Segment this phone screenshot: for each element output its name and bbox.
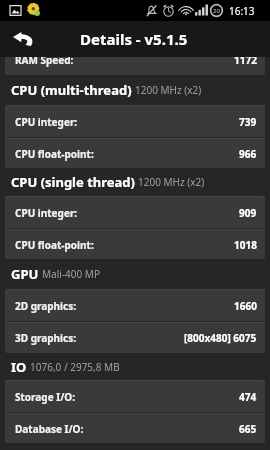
staticText: 2D graphics: bbox=[15, 299, 77, 313]
staticText: CPU integer: bbox=[15, 206, 78, 220]
button[interactable]: CPU float-point: bbox=[5, 139, 265, 168]
staticText: CPU integer: bbox=[15, 115, 78, 129]
staticText: CPU (single thread) bbox=[11, 173, 135, 191]
staticText: Mali-400 MP bbox=[42, 267, 100, 281]
staticText: 665 bbox=[239, 422, 257, 436]
button[interactable]: CPU float-point: bbox=[5, 230, 265, 259]
staticText: 474 bbox=[239, 390, 257, 404]
staticText: Storage I/O: bbox=[15, 390, 76, 404]
staticText: 1200 MHz (x2) bbox=[135, 83, 202, 97]
button[interactable]: CPU integer: bbox=[5, 197, 265, 228]
staticText: 739 bbox=[239, 115, 257, 129]
button[interactable]: Storage I/O: bbox=[5, 381, 265, 412]
staticText: 3D graphics: bbox=[15, 331, 77, 345]
staticText: 909 bbox=[239, 206, 257, 220]
staticText: CPU float-point: bbox=[15, 238, 94, 252]
staticText: 1172 bbox=[234, 57, 257, 67]
staticText: Database I/O: bbox=[15, 422, 84, 436]
staticText: RAM Speed: bbox=[15, 57, 74, 67]
staticText: 966 bbox=[239, 147, 257, 161]
button[interactable]: 3D graphics: bbox=[5, 323, 265, 353]
button[interactable]: 2D graphics: bbox=[5, 290, 265, 321]
staticText: 16:13 bbox=[229, 4, 255, 18]
staticText: 1076,0 / 2975,8 MB bbox=[30, 360, 120, 374]
button[interactable]: CPU integer: bbox=[5, 106, 265, 137]
staticText: 1018 bbox=[234, 238, 257, 252]
staticText: 20 bbox=[213, 7, 220, 15]
button[interactable]: Back bbox=[0, 21, 46, 57]
staticText: 1660 bbox=[234, 299, 257, 313]
staticText: CPU (multi-thread) bbox=[11, 81, 132, 99]
button[interactable]: RAM Speed: bbox=[5, 57, 265, 75]
staticText: CPU float-point: bbox=[15, 147, 94, 161]
button[interactable]: Database I/O: bbox=[5, 414, 265, 443]
staticText: IO bbox=[11, 358, 27, 376]
staticText: GPU bbox=[11, 265, 39, 283]
staticText: 1200 MHz (x2) bbox=[138, 175, 205, 189]
staticText: [800x480] 6075 bbox=[184, 331, 257, 345]
staticText: Details - v5.1.5 bbox=[80, 29, 188, 49]
